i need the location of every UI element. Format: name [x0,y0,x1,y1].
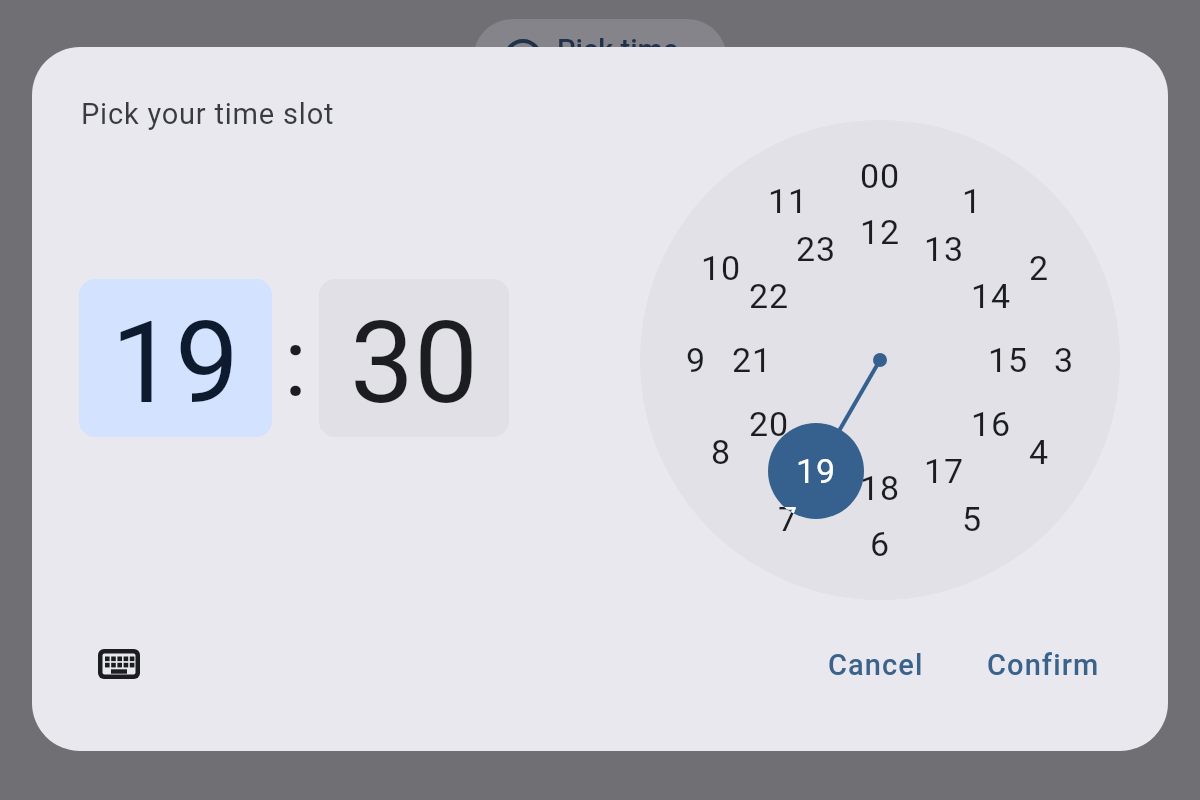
staticText: 9 [686,340,707,380]
staticText: Cancel [828,648,924,682]
staticText: 19 [796,451,837,491]
button[interactable]: 30 [319,279,509,437]
staticText: 3 [1054,340,1075,380]
staticText: 19 [111,296,240,430]
button[interactable]: 7 [768,423,864,519]
staticText: 4 [1029,432,1050,472]
staticText: 22 [749,276,790,316]
staticText: 12 [860,212,901,252]
staticText: 2 [1029,248,1050,288]
staticText: 6 [870,524,891,564]
staticText: Pick time [557,33,679,67]
staticText: 30 [350,296,479,430]
staticText: Confirm [987,648,1100,682]
staticText: Pick your time slot [81,97,335,131]
staticText: 15 [988,340,1029,380]
staticText: 17 [924,451,965,491]
staticText: 7 [778,499,799,539]
staticText: 18 [860,468,901,508]
button[interactable] [91,636,147,692]
staticText: 20 [749,404,790,444]
button[interactable]: Confirm [963,637,1123,693]
staticText: 8 [711,432,732,472]
staticText: : [284,307,308,418]
staticText: 10 [701,248,742,288]
staticText: 1 [962,181,983,221]
staticText: 23 [796,229,837,269]
button[interactable]: Cancel [806,637,946,693]
button[interactable]: Pick time [473,19,727,99]
staticText: 7 [778,499,799,519]
staticText: 16 [971,404,1012,444]
staticText: 13 [924,229,965,269]
staticText: 14 [971,276,1012,316]
staticText: 00 [860,156,901,196]
staticText: 11 [768,181,809,221]
staticText: 21 [732,340,773,380]
button[interactable]: 19 [79,279,272,437]
staticText: 5 [962,499,983,539]
